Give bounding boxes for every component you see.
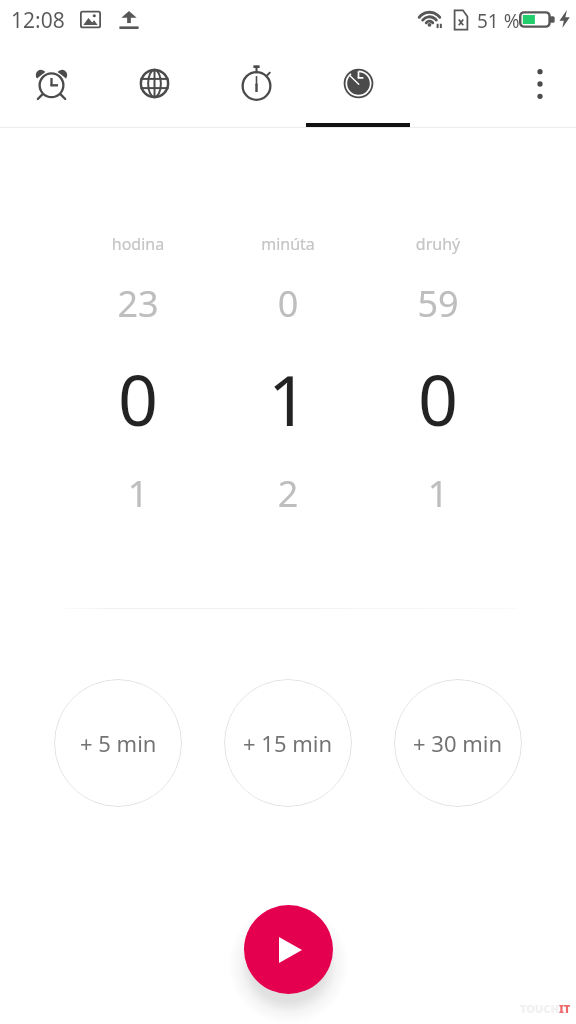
staticText: minúta xyxy=(208,233,368,255)
button[interactable]: + 15 min xyxy=(224,679,352,807)
button[interactable]: More options xyxy=(516,45,564,122)
staticText: 1 xyxy=(58,469,218,518)
staticText: 59 xyxy=(358,279,518,328)
staticText: TOUCH xyxy=(520,1001,559,1016)
staticText: hodina xyxy=(58,233,218,255)
staticText: 12:08 xyxy=(11,6,65,35)
staticText: IT xyxy=(559,1001,571,1016)
button[interactable]: Start timer xyxy=(244,905,333,994)
staticText: 0 xyxy=(358,351,518,446)
staticText: + 30 min xyxy=(413,728,503,758)
button[interactable]: Timer xyxy=(307,45,409,122)
button[interactable]: + 5 min xyxy=(54,679,182,807)
button[interactable]: Alarm xyxy=(0,45,102,122)
staticText: 0 xyxy=(58,351,218,446)
button[interactable]: Stopwatch xyxy=(205,45,307,122)
staticText: 1 xyxy=(208,351,368,446)
staticText: 0 xyxy=(208,279,368,328)
staticText: + 5 min xyxy=(80,728,157,758)
button[interactable]: World clock xyxy=(103,45,205,122)
staticText: 1 xyxy=(358,469,518,518)
button[interactable]: + 30 min xyxy=(394,679,522,807)
staticText: + 15 min xyxy=(243,728,333,758)
staticText: 2 xyxy=(208,469,368,518)
staticText: 23 xyxy=(58,279,218,328)
staticText: druhý xyxy=(358,233,518,255)
staticText: 51 % xyxy=(477,8,520,34)
